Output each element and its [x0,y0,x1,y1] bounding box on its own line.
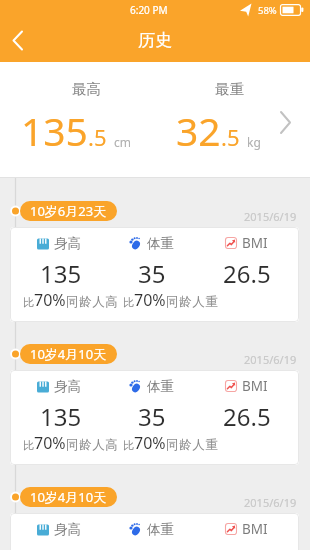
staticText: 35 [138,257,166,290]
staticText: 58% [258,4,277,17]
staticText: 2015/6/19 [244,209,297,224]
button[interactable] [10,513,299,550]
staticText: 身高 [54,521,81,538]
staticText: cm [114,134,131,150]
button[interactable] [10,370,299,465]
staticText: 体重 [147,378,174,395]
staticText: 同龄人高 [66,437,119,453]
staticText: 历史 [138,30,172,51]
staticText: 70% [34,289,66,311]
staticText: 比 [123,438,134,452]
staticText: 135 [21,104,88,156]
staticText: 同龄人高 [66,294,119,310]
staticText: 70% [34,432,66,454]
button[interactable] [4,26,34,56]
button[interactable] [10,227,299,322]
staticText: 135 [40,257,82,290]
staticText: 135 [40,400,82,433]
staticText: .5 [88,122,107,152]
staticText: 70% [134,289,166,311]
staticText: 体重 [147,235,174,252]
staticText: 70% [134,432,166,454]
staticText: 同龄人重 [166,437,219,453]
staticText: BMI [242,377,268,395]
button[interactable] [270,100,310,145]
staticText: 身高 [54,235,81,252]
staticText: 35 [138,400,166,433]
staticText: 26.5 [223,257,271,290]
button[interactable]: 10岁4月10天 [20,487,117,507]
staticText: 最重 [215,80,244,98]
staticText: 同龄人重 [166,294,219,310]
staticText: 身高 [54,378,81,395]
staticText: 比 [23,295,34,309]
staticText: 比 [23,438,34,452]
staticText: BMI [242,234,268,252]
staticText: 体重 [147,521,174,538]
staticText: 比 [123,295,134,309]
button[interactable]: 10岁4月10天 [20,344,117,364]
staticText: 10岁6月23天 [30,202,107,220]
staticText: 6:20 PM [130,3,168,17]
button[interactable]: 10岁6月23天 [20,201,117,221]
staticText: 2015/6/19 [244,352,297,367]
staticText: BMI [242,520,268,538]
staticText: 26.5 [223,400,271,433]
staticText: kg [247,134,261,150]
staticText: 2015/6/19 [244,495,297,510]
staticText: 10岁4月10天 [30,345,107,363]
staticText: 10岁4月10天 [30,488,107,506]
staticText: 32 [176,104,221,156]
staticText: 最高 [72,80,101,98]
staticText: .5 [221,122,240,152]
